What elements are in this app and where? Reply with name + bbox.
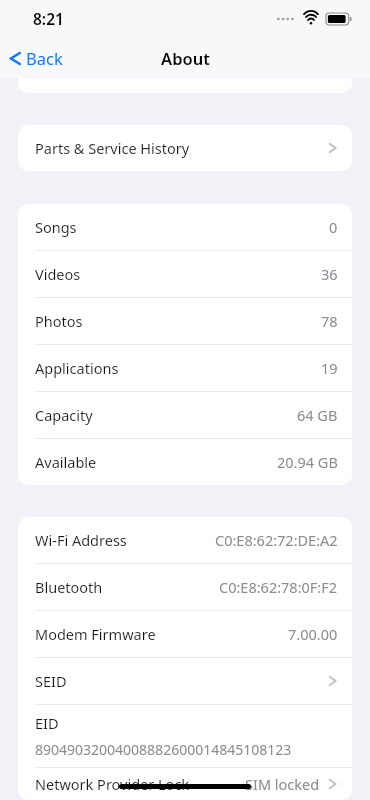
button[interactable]: Available [18,439,352,485]
staticText: EID [35,713,59,733]
staticText: Modem Firmware [35,624,156,644]
staticText: 89049032004008882600014845108123 [35,740,292,759]
staticText: 8:21 [33,8,64,29]
button[interactable]: Applications [18,345,352,391]
button[interactable]: Parts & Service History [18,125,352,171]
button[interactable]: Videos [18,251,352,297]
staticText: Capacity [35,405,93,425]
button[interactable]: Songs [18,204,352,250]
button[interactable]: SEID [18,658,352,704]
staticText: 20.94 GB [277,452,338,472]
staticText: Applications [35,358,119,378]
button[interactable]: Capacity [18,392,352,438]
staticText: 36 [321,264,338,284]
staticText: Network Provider Lock [35,774,190,794]
button[interactable]: Modem Firmware [18,611,352,657]
button[interactable]: Wi-Fi Address [18,517,352,563]
staticText: SIM locked [245,774,320,794]
staticText: Songs [35,217,77,237]
staticText: About [161,47,210,69]
staticText: SEID [35,671,67,691]
staticText: Parts & Service History [35,138,190,158]
staticText: C0:E8:62:78:0F:F2 [219,577,338,597]
button[interactable]: Back [0,42,73,74]
staticText: 78 [321,311,338,331]
button[interactable]: Photos [18,298,352,344]
other: Open [327,673,338,689]
button[interactable]: EID [18,705,352,767]
button[interactable]: Network Provider Lock [18,768,352,800]
staticText: Videos [35,264,81,284]
staticText: 64 GB [297,405,338,425]
staticText: Bluetooth [35,577,103,597]
staticText: 7.00.00 [288,624,338,644]
staticText: Back [26,47,63,69]
staticText: 0 [329,217,338,237]
staticText: Wi-Fi Address [35,530,127,550]
button[interactable]: Bluetooth [18,564,352,610]
staticText: C0:E8:62:72:DE:A2 [215,530,338,550]
other: Open [327,140,338,156]
staticText: Available [35,452,97,472]
other: Open [327,776,338,792]
staticText: 19 [321,358,338,378]
staticText: Photos [35,311,83,331]
